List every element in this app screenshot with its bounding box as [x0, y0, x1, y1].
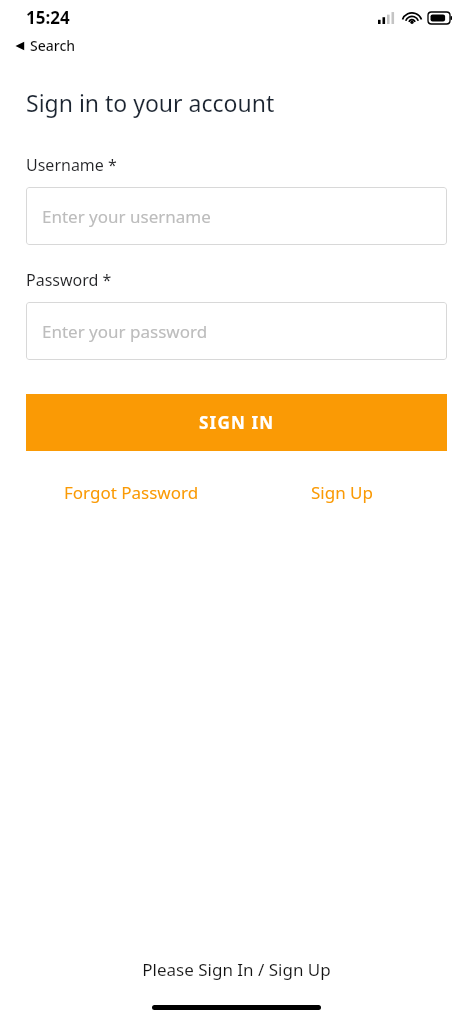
staticText: Enter your password — [42, 320, 208, 343]
staticText: SIGN IN — [199, 411, 275, 434]
staticText: Username * — [26, 154, 117, 176]
staticText: 15:24 — [26, 6, 70, 29]
staticText: Password * — [26, 269, 112, 291]
button[interactable]: Enter your password — [26, 302, 447, 360]
staticText: Search — [30, 36, 76, 55]
staticText: Forgot Password — [64, 481, 199, 504]
staticText: Sign Up — [311, 481, 373, 504]
staticText: Sign in to your account — [26, 87, 275, 118]
button[interactable]: SIGN IN — [26, 394, 447, 451]
button[interactable]: Sign Up — [305, 477, 379, 508]
button[interactable]: Back to Search — [12, 34, 79, 57]
button[interactable]: Enter your username — [26, 187, 447, 245]
other: Back to Search — [15, 41, 25, 51]
staticText: Enter your username — [42, 205, 211, 228]
staticText: Please Sign In / Sign Up — [142, 958, 331, 981]
button[interactable]: Forgot Password — [58, 477, 205, 508]
